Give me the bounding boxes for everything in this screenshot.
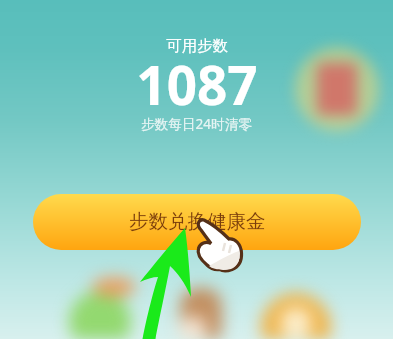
button[interactable]: 步数兑换健康金 [33, 194, 361, 250]
staticText: 步数每日24时清零 [141, 114, 252, 133]
staticText: 步数兑换健康金 [129, 209, 266, 234]
staticText: 1087 [136, 48, 258, 120]
staticText: 可用步数 [166, 36, 228, 56]
